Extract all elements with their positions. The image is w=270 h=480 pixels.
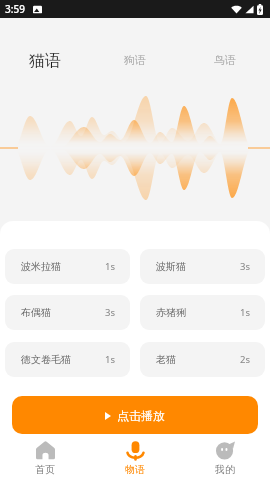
staticText: 3:59 <box>5 2 25 16</box>
button[interactable]: 点击播放 <box>12 396 258 434</box>
button[interactable]: 老猫 <box>140 342 265 377</box>
staticText: 3s <box>240 260 250 273</box>
button[interactable]: 波米拉猫 <box>5 249 130 284</box>
staticText: 波斯猫 <box>156 260 186 273</box>
button[interactable]: 布偶猫 <box>5 295 130 330</box>
staticText: 2s <box>240 353 250 366</box>
staticText: 我的 <box>215 463 235 476</box>
staticText: 波米拉猫 <box>21 260 61 273</box>
staticText: 3s <box>105 306 115 319</box>
staticText: 布偶猫 <box>21 306 51 319</box>
staticText: 1s <box>240 306 250 319</box>
button[interactable]: 狗语 <box>90 18 180 68</box>
button[interactable]: 赤猪猁 <box>140 295 265 330</box>
button[interactable]: 猫语 <box>0 18 90 68</box>
button[interactable]: 物语 <box>90 441 180 476</box>
staticText: 1s <box>105 260 115 273</box>
staticText: 1s <box>105 353 115 366</box>
staticText: 物语 <box>125 463 145 476</box>
staticText: 鸟语 <box>214 53 236 67</box>
staticText: 老猫 <box>156 353 176 366</box>
staticText: 首页 <box>35 463 55 476</box>
staticText: 狗语 <box>124 53 146 67</box>
staticText: 点击播放 <box>117 408 165 423</box>
button[interactable]: 我的 <box>180 441 270 476</box>
button[interactable]: 鸟语 <box>180 18 270 68</box>
staticText: 猫语 <box>29 51 61 68</box>
staticText: 赤猪猁 <box>156 306 186 319</box>
button[interactable]: 德文卷毛猫 <box>5 342 130 377</box>
button[interactable]: 波斯猫 <box>140 249 265 284</box>
staticText: 德文卷毛猫 <box>21 353 71 366</box>
button[interactable]: 首页 <box>0 441 90 476</box>
